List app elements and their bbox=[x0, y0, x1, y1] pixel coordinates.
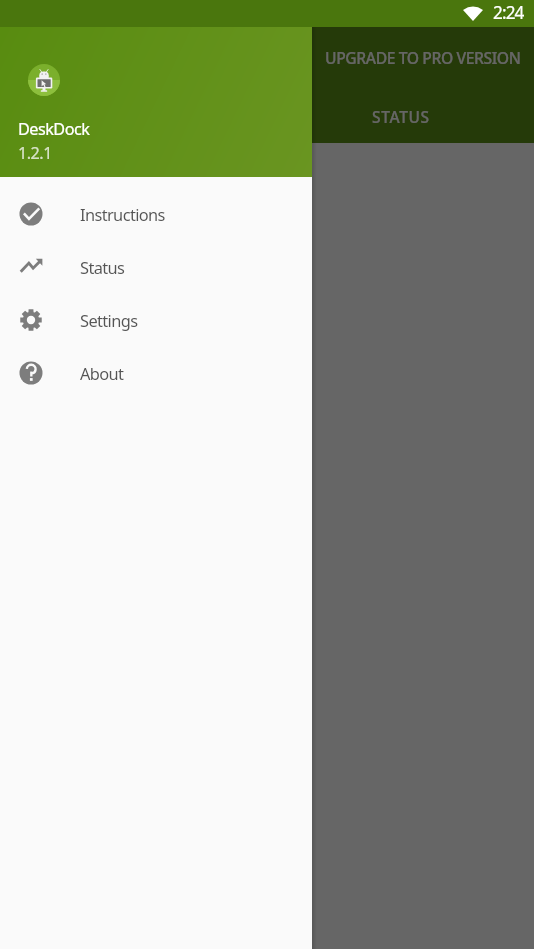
button[interactable]: Status bbox=[0, 240, 312, 293]
button[interactable]: Settings bbox=[0, 293, 312, 346]
staticText: Instructions bbox=[80, 203, 165, 225]
staticText: About bbox=[80, 362, 124, 384]
button[interactable]: Instructions bbox=[0, 187, 312, 240]
other: Wi-Fi signal bbox=[463, 6, 483, 21]
button[interactable]: About bbox=[0, 346, 312, 399]
staticText: Settings bbox=[80, 309, 138, 331]
button[interactable]: DeskDock bbox=[0, 27, 312, 177]
staticText: STATUS bbox=[372, 106, 430, 127]
button[interactable]: UPGRADE TO PRO VERSION bbox=[312, 27, 534, 87]
staticText: UPGRADE TO PRO VERSION bbox=[325, 47, 521, 68]
staticText: DeskDock bbox=[18, 118, 90, 140]
staticText: 2:24 bbox=[493, 1, 524, 24]
button[interactable]: STATUS bbox=[301, 88, 501, 144]
staticText: Status bbox=[80, 256, 125, 278]
staticText: 1.2.1 bbox=[18, 142, 52, 164]
